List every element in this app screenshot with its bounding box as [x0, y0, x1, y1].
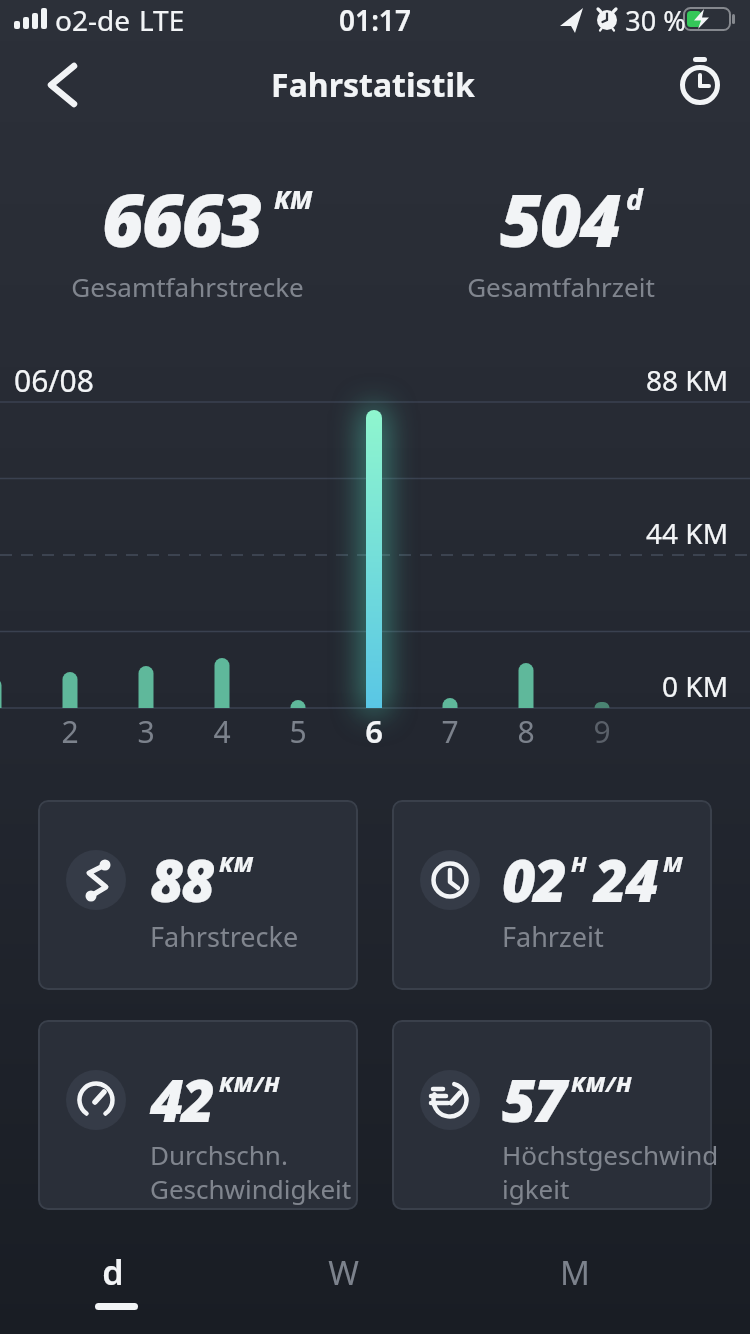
staticText: M [663, 848, 684, 878]
staticText: 9 [593, 711, 611, 752]
staticText: Fahrstrecke [150, 918, 299, 955]
staticText: Höchstgeschwind igkeit [502, 1137, 719, 1206]
staticText: 504 [500, 170, 620, 268]
staticText: Gesamtfahrzeit [467, 269, 655, 304]
staticText: 7 [441, 711, 459, 752]
staticText: 8 [517, 711, 535, 752]
staticText: o2-de [55, 1, 130, 39]
staticText: 6 [365, 710, 383, 752]
staticText: d [102, 1249, 124, 1295]
staticText: 06/08 [14, 360, 94, 401]
staticText: 01:17 [339, 1, 411, 39]
staticText: KM/H [571, 1068, 633, 1098]
staticText: M [560, 1250, 590, 1295]
staticText: 3 [137, 711, 155, 752]
staticText: 02 [502, 840, 565, 919]
staticText: 88 [150, 840, 213, 919]
staticText: 57 [502, 1060, 565, 1139]
staticText: 5 [289, 711, 307, 752]
staticText: LTE [139, 1, 185, 39]
staticText: 0 KM [662, 667, 729, 705]
staticText: KM [219, 848, 254, 878]
staticText: 24 [594, 840, 657, 919]
staticText: Gesamtfahrstrecke [71, 269, 304, 304]
staticText: Fahrzeit [502, 918, 604, 955]
staticText: W [328, 1250, 359, 1295]
staticText: 6663 [102, 170, 262, 268]
staticText: 2 [61, 711, 79, 752]
staticText: d [626, 180, 643, 218]
staticText: KM [274, 182, 313, 216]
staticText: Fahrstatistik [271, 63, 475, 107]
staticText: KM/H [219, 1068, 281, 1098]
staticText: 30 % [625, 2, 686, 39]
staticText: 44 KM [646, 514, 729, 552]
staticText: 88 KM [646, 361, 729, 399]
staticText: 4 [213, 711, 231, 752]
staticText: H [571, 848, 588, 878]
staticText: Durchschn. Geschwindigkeit [150, 1137, 352, 1206]
staticText: 42 [150, 1060, 213, 1139]
